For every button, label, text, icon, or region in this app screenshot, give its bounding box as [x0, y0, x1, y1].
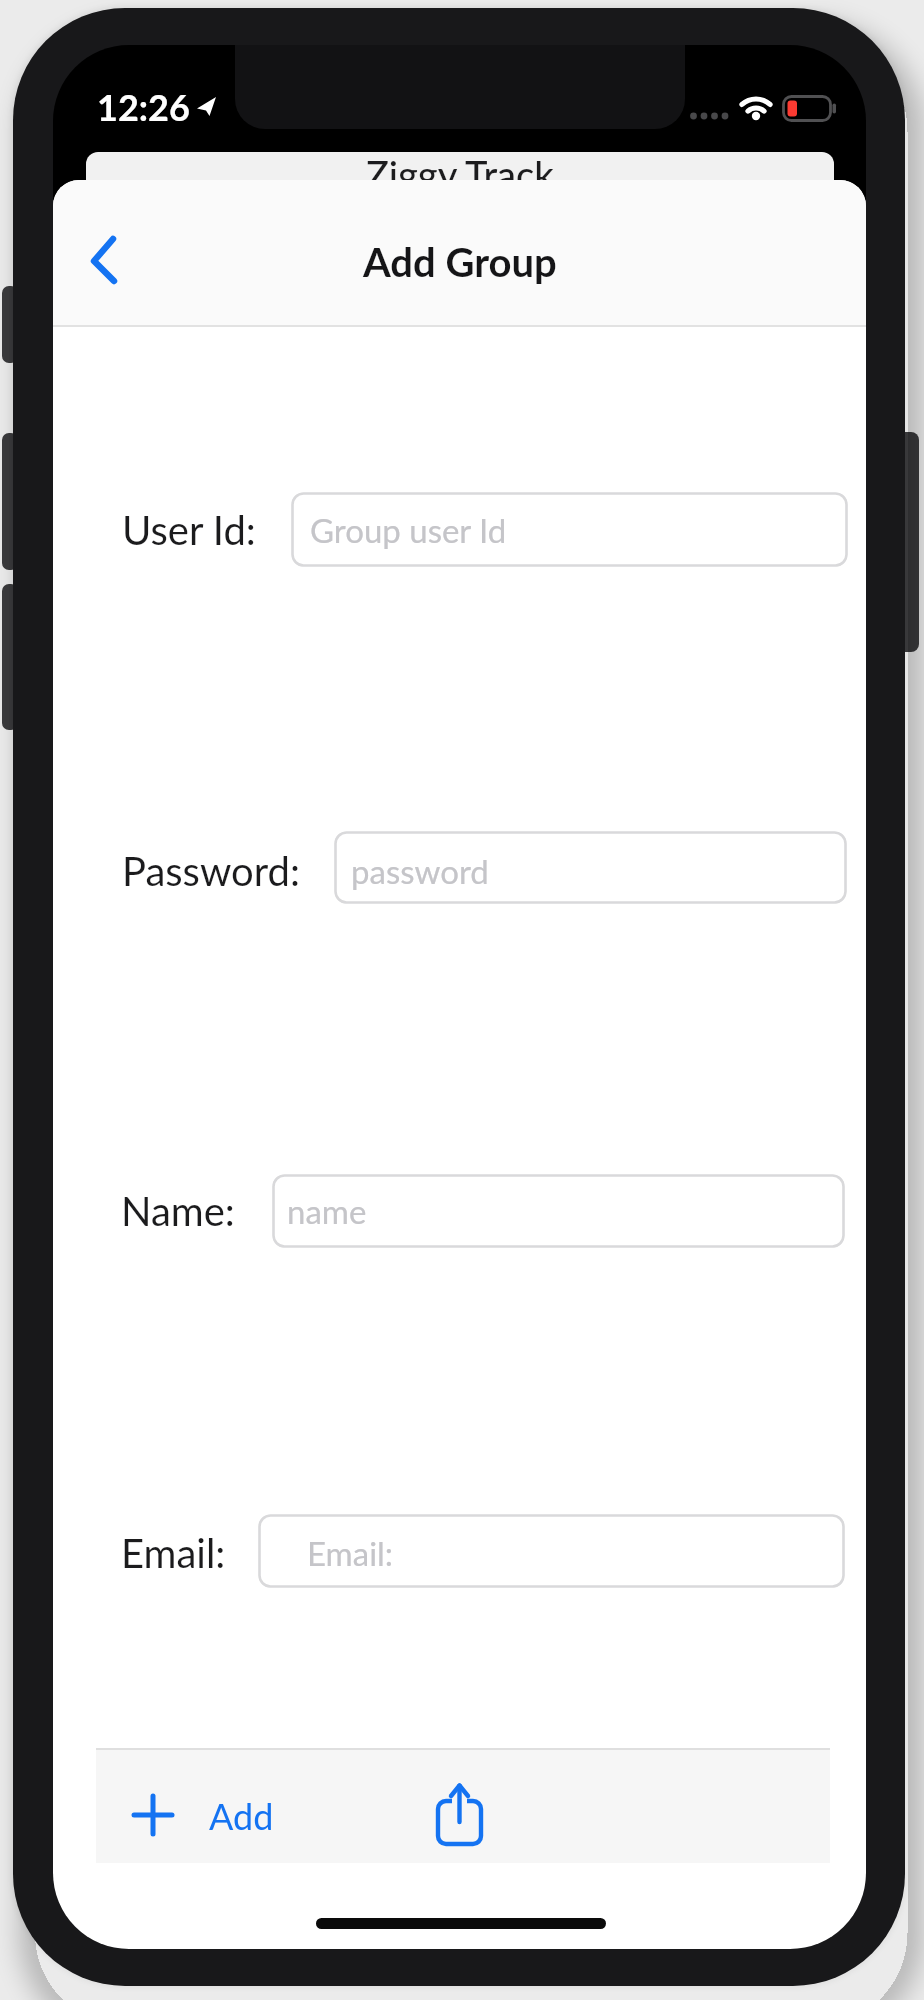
staticText: 12:26: [97, 85, 190, 128]
button[interactable]: [258, 1514, 845, 1588]
staticText: name: [287, 1191, 367, 1231]
button[interactable]: Add: [123, 1780, 333, 1850]
staticText: Ziggy Track: [366, 151, 554, 197]
button[interactable]: [79, 224, 139, 298]
button[interactable]: [272, 1174, 845, 1248]
staticText: Group user Id: [310, 510, 507, 550]
button[interactable]: [423, 1770, 497, 1850]
staticText: Name:: [121, 1187, 235, 1235]
staticText: Add: [209, 1794, 274, 1837]
button[interactable]: [291, 492, 848, 567]
staticText: Email:: [307, 1533, 394, 1573]
staticText: Email:: [121, 1529, 226, 1577]
staticText: Password:: [122, 847, 300, 895]
button[interactable]: [334, 831, 847, 904]
staticText: User Id:: [122, 506, 256, 554]
staticText: Add Group: [363, 238, 557, 286]
staticText: password: [351, 851, 489, 891]
